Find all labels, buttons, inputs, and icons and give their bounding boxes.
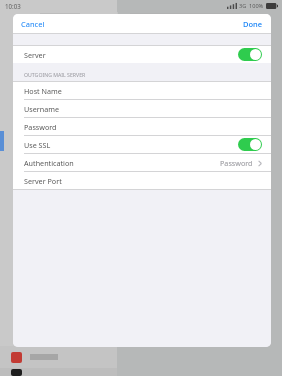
staticText: Username	[24, 104, 59, 114]
staticText: 10:03	[5, 2, 21, 10]
button[interactable]: Toggle on	[238, 138, 262, 151]
button[interactable]: Server Port	[13, 172, 271, 189]
staticText: Password	[24, 122, 57, 132]
button[interactable]: Cancel	[13, 16, 53, 32]
staticText: Done	[243, 19, 263, 29]
staticText: 3G	[239, 2, 247, 10]
staticText: Use SSL	[24, 140, 51, 150]
button[interactable]: Done	[235, 16, 271, 32]
staticText: Password	[220, 158, 253, 168]
button[interactable]: Username	[13, 100, 271, 117]
button[interactable]: Server	[13, 46, 271, 63]
staticText: 100%	[249, 2, 264, 10]
button[interactable]: Toggle on	[238, 48, 262, 61]
button[interactable]: Password	[13, 118, 271, 135]
staticText: Host Name	[24, 86, 62, 96]
staticText: Server Port	[24, 176, 62, 186]
button[interactable]: Use SSL	[13, 136, 271, 153]
staticText: Server	[24, 50, 46, 60]
staticText: Cancel	[21, 19, 45, 29]
staticText: Authentication	[24, 158, 74, 168]
button[interactable]: Host Name	[13, 82, 271, 99]
button[interactable]: Authentication	[13, 154, 271, 171]
staticText: OUTGOING MAIL SERVER	[24, 71, 86, 78]
